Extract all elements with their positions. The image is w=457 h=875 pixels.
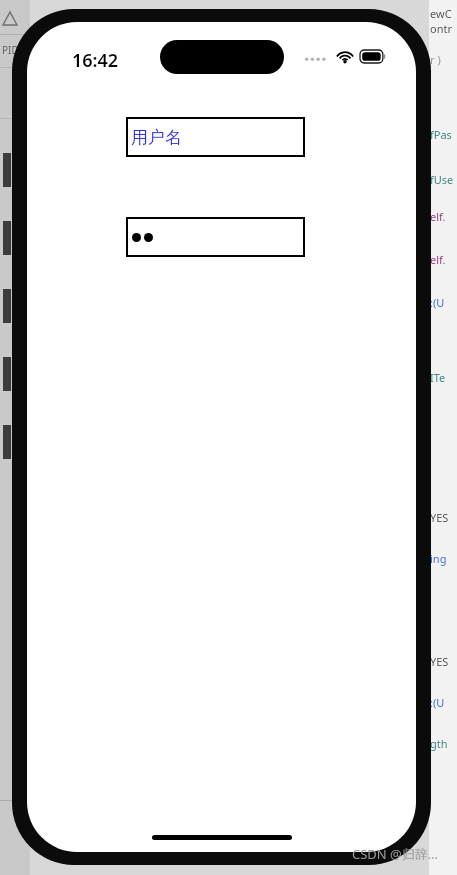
staticText: YES: [430, 510, 449, 525]
staticText: ing: [430, 551, 447, 566]
staticText: CSDN @归辞…: [352, 845, 439, 863]
staticText: elf.: [430, 252, 446, 267]
staticText: :(U: [430, 295, 445, 310]
button[interactable]: 用户名: [126, 117, 305, 157]
staticText: ITe: [430, 370, 446, 385]
staticText: elf.: [430, 209, 446, 224]
staticText: :(U: [430, 695, 445, 710]
staticText: 用户名: [131, 127, 182, 148]
staticText: PID: [2, 43, 19, 57]
staticText: 16:42: [72, 48, 119, 73]
staticText: fPas: [430, 127, 452, 142]
button[interactable]: Password field: [126, 217, 305, 257]
staticText: r ): [430, 52, 441, 67]
staticText: gth: [430, 736, 448, 751]
staticText: ewContr: [430, 6, 457, 36]
staticText: YES: [430, 654, 449, 669]
staticText: fUse: [430, 172, 454, 187]
